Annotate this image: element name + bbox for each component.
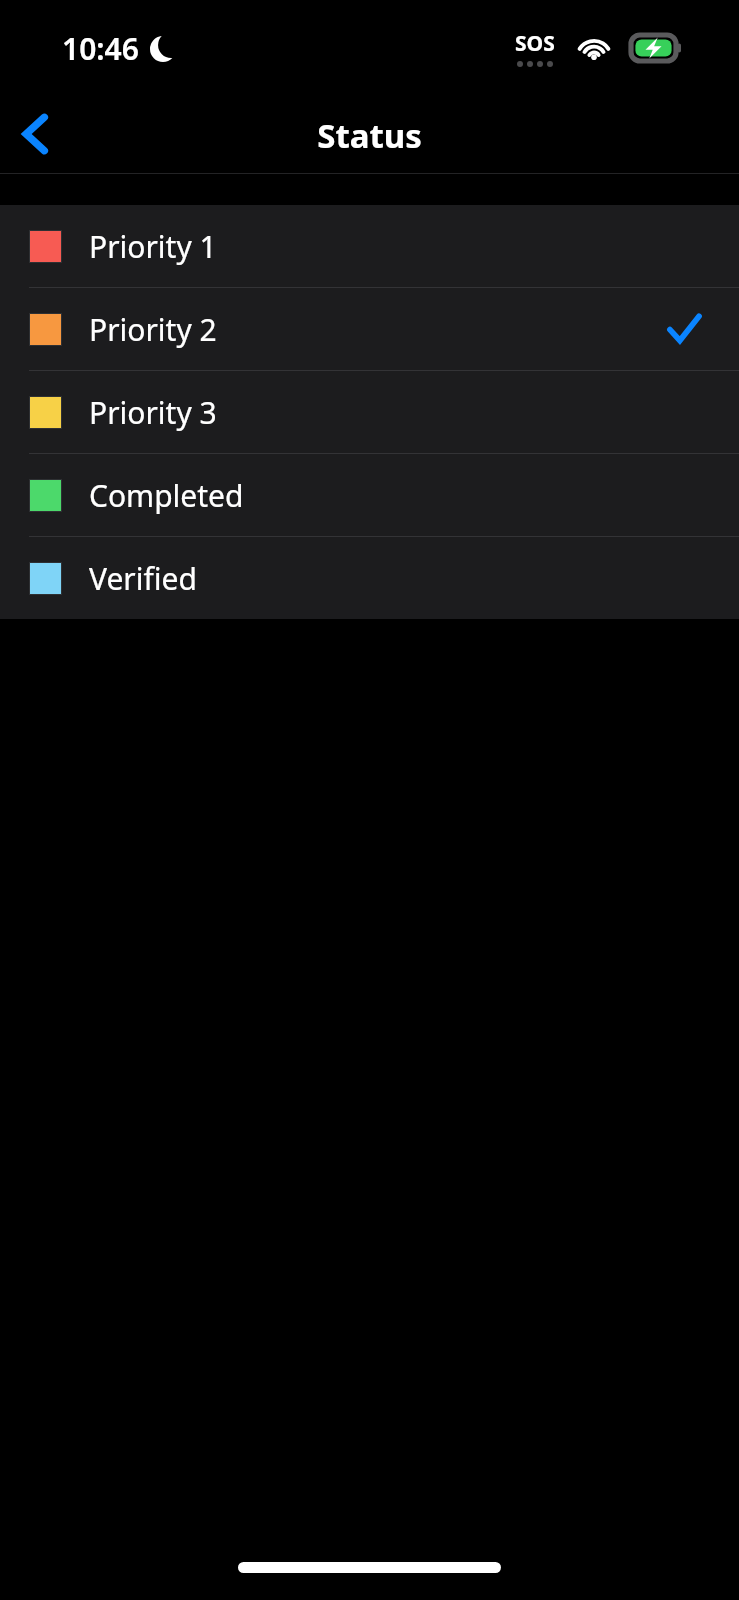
staticText: Priority 3 — [89, 392, 217, 433]
button[interactable]: Completed — [0, 454, 739, 536]
staticText: Verified — [89, 558, 197, 599]
staticText: Status — [0, 113, 739, 158]
button[interactable]: Priority 2 — [0, 288, 739, 370]
button[interactable]: Verified — [0, 537, 739, 619]
button[interactable]: Priority 3 — [0, 371, 739, 453]
staticText: Priority 1 — [89, 226, 217, 267]
staticText: Completed — [89, 475, 244, 516]
staticText: Priority 2 — [89, 309, 217, 350]
staticText: 10:46 — [62, 28, 139, 69]
staticText: SOS — [515, 29, 555, 58]
button[interactable]: Back — [0, 99, 70, 169]
button[interactable]: Priority 1 — [0, 205, 739, 287]
